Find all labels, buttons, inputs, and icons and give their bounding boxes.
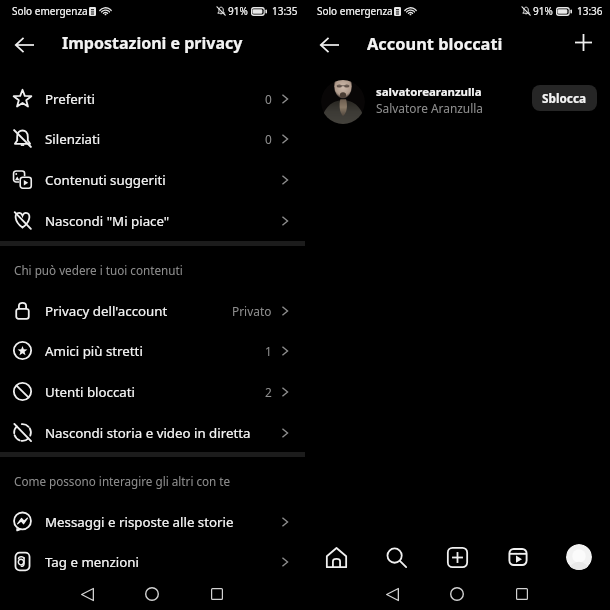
staticText: Come possono interagire gli altri con te — [14, 473, 231, 489]
button[interactable]: Back — [313, 26, 345, 58]
button[interactable]: salvatorearanzulla — [305, 76, 610, 128]
staticText: Utenti bloccati — [45, 383, 136, 401]
staticText: Nascondi storia e video in diretta — [45, 424, 251, 442]
staticText: Nascondi "Mi piace" — [45, 212, 170, 230]
button[interactable]: Recents — [205, 582, 229, 606]
staticText: Privato — [232, 303, 272, 319]
button[interactable]: Utenti bloccati — [0, 371, 305, 412]
button[interactable]: Nascondi storia e video in diretta — [0, 412, 305, 453]
button[interactable]: Sblocca — [532, 85, 597, 111]
staticText: 1 — [265, 343, 272, 359]
staticText: 0 — [265, 91, 272, 107]
button[interactable]: Messaggi e risposte alle storie — [0, 501, 305, 542]
staticText: Chi può vedere i tuoi contenuti — [14, 262, 183, 278]
staticText: Amici più stretti — [45, 342, 143, 360]
staticText: Impostazioni e privacy — [62, 32, 243, 54]
button[interactable]: Back — [380, 582, 404, 606]
staticText: 91% — [533, 4, 553, 18]
staticText: Privacy dell'account — [45, 302, 168, 320]
button[interactable]: Privacy dell'account — [0, 290, 305, 331]
button[interactable]: Preferiti — [0, 78, 305, 119]
button[interactable]: Back — [8, 26, 40, 58]
staticText: Salvatore Aranzulla — [376, 100, 483, 116]
button[interactable]: Back — [75, 582, 99, 606]
button[interactable]: Silenziati — [0, 118, 305, 159]
staticText: 0 — [265, 131, 272, 147]
staticText: salvatorearanzulla — [376, 84, 482, 100]
button[interactable]: Reels — [499, 538, 537, 576]
staticText: 13:35 — [272, 4, 298, 18]
staticText: Messaggi e risposte alle storie — [45, 513, 234, 531]
button[interactable]: Tag e menzioni — [0, 541, 305, 582]
button[interactable]: Nascondi "Mi piace" — [0, 200, 305, 241]
button[interactable]: Recents — [510, 582, 534, 606]
staticText: Tag e menzioni — [45, 553, 139, 571]
staticText: Silenziati — [45, 130, 101, 148]
staticText: Contenuti suggeriti — [45, 171, 166, 189]
button[interactable]: Home — [445, 582, 469, 606]
staticText: Sblocca — [542, 90, 587, 106]
button[interactable]: Create — [438, 538, 476, 576]
button[interactable]: Home — [140, 582, 164, 606]
staticText: 13:36 — [577, 4, 603, 18]
button[interactable]: Add — [567, 26, 599, 58]
staticText: Solo emergenza — [317, 4, 393, 18]
button[interactable]: Contenuti suggeriti — [0, 159, 305, 200]
staticText: Preferiti — [45, 90, 95, 108]
button[interactable]: Profile — [560, 538, 598, 576]
staticText: 91% — [228, 4, 248, 18]
button[interactable]: Amici più stretti — [0, 330, 305, 371]
staticText: Account bloccati — [367, 32, 503, 54]
staticText: Solo emergenza — [12, 4, 88, 18]
button[interactable]: Home — [317, 538, 355, 576]
button[interactable]: Search — [377, 538, 415, 576]
staticText: 2 — [265, 384, 272, 400]
